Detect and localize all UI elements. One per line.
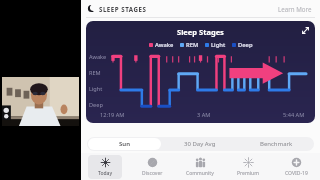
button[interactable]: 30 Day Avg	[163, 138, 237, 150]
button[interactable]: Benchmark	[239, 138, 313, 150]
staticText: SLEEP STAGES	[99, 5, 147, 13]
button[interactable]: Community	[176, 153, 224, 180]
button[interactable]: Today	[81, 153, 128, 180]
staticText: 3 AM	[197, 111, 211, 119]
staticText: Light	[211, 41, 226, 49]
staticText: Deep	[238, 41, 253, 49]
staticText: 5:44 AM	[283, 111, 305, 119]
staticText: Benchmark	[260, 140, 293, 148]
button[interactable]: Expand chart	[301, 26, 310, 35]
button[interactable]: Sun	[88, 138, 161, 150]
staticText: Today	[98, 170, 113, 177]
button[interactable]: Sleep Stages	[86, 21, 315, 123]
staticText: COVID-19	[285, 170, 308, 177]
staticText: Awake	[155, 41, 174, 49]
button[interactable]: Premium	[224, 153, 272, 180]
button[interactable]: COVID-19	[272, 153, 320, 180]
staticText: Discover	[142, 170, 163, 177]
staticText: Deep	[89, 101, 103, 109]
button[interactable]: Learn More	[276, 3, 314, 15]
staticText: Sun	[119, 140, 130, 148]
staticText: REM	[186, 41, 199, 49]
staticText: Premium	[237, 170, 259, 177]
staticText: Sleep Stages	[177, 27, 224, 37]
staticText: 30 Day Avg	[184, 140, 216, 148]
staticText: 12:19 AM	[100, 111, 125, 119]
staticText: Light	[89, 85, 103, 93]
staticText: Awake	[89, 53, 107, 61]
staticText: Community	[186, 170, 214, 177]
staticText: Learn More	[278, 5, 312, 13]
staticText: REM	[89, 69, 101, 77]
button[interactable]: Discover	[128, 153, 176, 180]
